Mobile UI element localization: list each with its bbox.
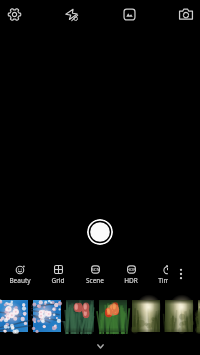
staticText: Scene xyxy=(78,276,112,285)
staticText: Beauty xyxy=(3,276,37,285)
button[interactable]: Settings xyxy=(1,1,27,27)
button[interactable]: Photo 6 xyxy=(165,300,193,332)
button[interactable]: Photo 3 xyxy=(66,300,94,332)
button[interactable]: Take photo xyxy=(87,219,113,245)
button[interactable]: Photo 7 xyxy=(198,300,200,332)
staticText: HDR xyxy=(114,276,148,285)
staticText: Timer xyxy=(150,276,168,285)
button[interactable]: Photo 2 xyxy=(33,300,61,332)
staticText: SCN xyxy=(91,267,100,273)
button[interactable]: Flash off xyxy=(58,1,84,27)
button[interactable]: More options xyxy=(172,262,189,286)
staticText: HDR xyxy=(127,267,136,273)
button[interactable]: Photo 4 xyxy=(99,300,127,332)
button[interactable]: Beauty xyxy=(3,261,37,287)
button[interactable]: Switch camera xyxy=(173,1,199,27)
button[interactable]: Photo 1 xyxy=(0,300,28,332)
staticText: Grid xyxy=(41,276,75,285)
button[interactable]: HDR xyxy=(114,261,148,287)
button[interactable]: Collapse gallery xyxy=(0,337,200,355)
button[interactable]: SCN xyxy=(78,261,112,287)
button[interactable]: Grid xyxy=(41,261,75,287)
button[interactable]: Photo 5 xyxy=(132,300,160,332)
button[interactable]: HDR mode xyxy=(116,1,142,27)
button[interactable]: Timer xyxy=(150,261,168,287)
